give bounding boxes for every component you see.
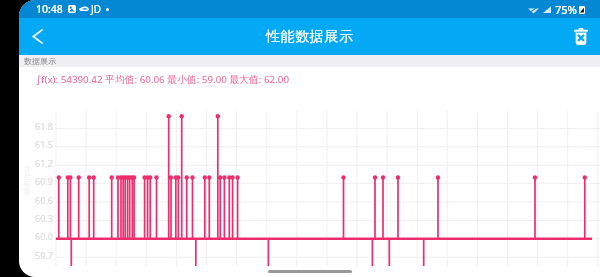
- staticText: 60.9: [35, 175, 53, 187]
- staticText: JD: [91, 2, 102, 16]
- staticText: 60.6: [35, 194, 53, 206]
- staticText: 性能数据展示: [266, 28, 354, 46]
- staticText: 61.8: [35, 120, 53, 132]
- staticText: ∫f(x): 54390.42 平均值: 60.06 最小值: 59.00 最大…: [36, 73, 290, 86]
- staticText: 59.7: [35, 249, 53, 261]
- staticText: 75%: [555, 2, 577, 17]
- staticText: 60.0: [35, 230, 53, 242]
- staticText: 60.3: [35, 212, 53, 224]
- button[interactable]: 数据展示: [19, 55, 600, 67]
- staticText: 61.2: [35, 157, 53, 169]
- staticText: 61.5: [35, 138, 53, 150]
- button[interactable]: Back: [19, 18, 56, 55]
- staticText: 帧率(fps): [21, 165, 31, 194]
- button[interactable]: Delete: [563, 18, 598, 55]
- staticText: 10:48: [36, 2, 63, 16]
- staticText: 数据展示: [24, 56, 56, 66]
